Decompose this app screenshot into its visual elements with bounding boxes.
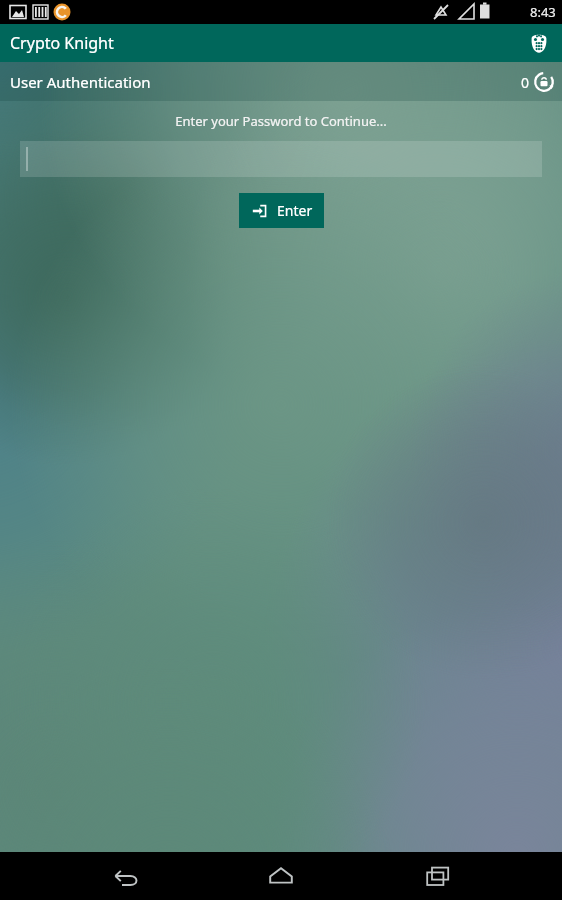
staticText: 8:43: [530, 3, 556, 21]
button[interactable]: Password field: [20, 141, 542, 177]
button[interactable]: Back: [93, 852, 157, 900]
button[interactable]: Recent apps: [406, 852, 470, 900]
staticText: Crypto Knight: [10, 32, 114, 54]
staticText: Enter: [277, 201, 313, 220]
staticText: Enter your Password to Continue...: [0, 112, 562, 130]
button[interactable]: Mask menu: [522, 26, 556, 60]
staticText: User Authentication: [10, 72, 151, 92]
button[interactable]: Enter: [239, 193, 324, 228]
staticText: 0: [521, 73, 530, 92]
button[interactable]: Home: [249, 852, 313, 900]
button[interactable]: Failed attempts, reset: [521, 71, 555, 93]
